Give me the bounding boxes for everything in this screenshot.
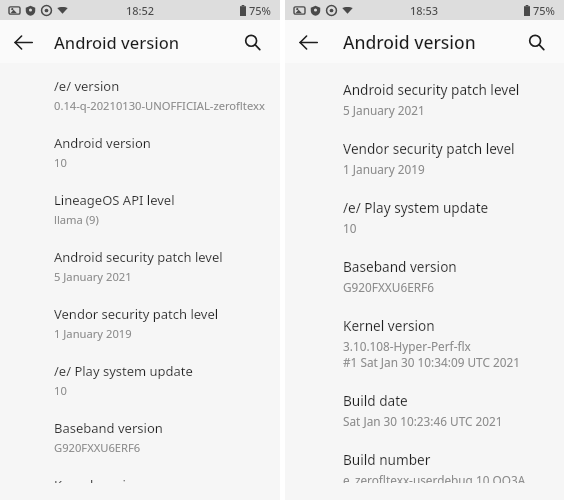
staticText: llama (9) xyxy=(54,212,99,227)
staticText: /e/ version xyxy=(54,77,120,95)
button[interactable]: Android security patch level xyxy=(0,244,280,301)
button[interactable]: Baseband version xyxy=(0,415,280,472)
staticText: 18:52 xyxy=(126,3,155,18)
staticText: 1 January 2019 xyxy=(54,326,132,341)
button[interactable]: /e/ Play system update xyxy=(0,358,280,415)
staticText: 10 xyxy=(54,155,67,170)
staticText: 75% xyxy=(533,3,555,18)
staticText: Baseband version xyxy=(343,257,457,276)
staticText: 1 January 2019 xyxy=(343,161,425,177)
staticText: Vendor security patch level xyxy=(343,139,515,158)
staticText: Vendor security patch level xyxy=(54,305,219,323)
staticText: Android version xyxy=(54,134,151,152)
button[interactable]: Android security patch level xyxy=(285,76,564,135)
button[interactable]: Build date xyxy=(285,387,564,446)
button[interactable]: Vendor security patch level xyxy=(0,301,280,358)
staticText: 75% xyxy=(249,3,271,18)
button[interactable]: Back xyxy=(290,24,326,60)
staticText: Kernel version xyxy=(343,316,435,335)
staticText: Android version xyxy=(54,31,180,53)
staticText: Build number xyxy=(343,450,431,469)
staticText: 5 January 2021 xyxy=(54,269,132,284)
staticText: 10 xyxy=(54,383,67,398)
button[interactable]: Search xyxy=(518,24,554,60)
staticText: 5 January 2021 xyxy=(343,102,425,118)
staticText: LineageOS API level xyxy=(54,191,175,209)
button[interactable]: Search xyxy=(234,24,270,60)
button[interactable]: Kernel version xyxy=(285,312,564,387)
staticText: #1 Sat Jan 30 10:34:09 UTC 2021 xyxy=(343,354,520,370)
button[interactable]: Baseband version xyxy=(285,253,564,312)
staticText: Android security patch level xyxy=(54,248,223,266)
staticText: e_zerofltexx-userdebug 10 QQ3A. xyxy=(343,472,529,483)
button[interactable]: Kernel version xyxy=(0,472,280,500)
button[interactable]: Back xyxy=(5,24,41,60)
staticText: Android security patch level xyxy=(343,80,520,99)
staticText: 0.14-q-20210130-UNOFFICIAL-zerofltexx xyxy=(54,98,265,113)
staticText: Kernel version xyxy=(54,476,142,483)
button[interactable]: Build number xyxy=(285,446,564,500)
staticText: 10 xyxy=(343,220,357,236)
staticText: Baseband version xyxy=(54,419,163,437)
staticText: G920FXXU6ERF6 xyxy=(54,440,141,455)
staticText: Android version xyxy=(343,30,476,54)
button[interactable]: LineageOS API level xyxy=(0,187,280,244)
staticText: 3.10.108-Hyper-Perf-flx xyxy=(343,338,471,354)
button[interactable]: /e/ version xyxy=(0,73,280,130)
staticText: /e/ Play system update xyxy=(343,198,489,217)
staticText: 18:53 xyxy=(410,3,439,18)
staticText: /e/ Play system update xyxy=(54,362,193,380)
button[interactable]: /e/ Play system update xyxy=(285,194,564,253)
staticText: Sat Jan 30 10:23:46 UTC 2021 xyxy=(343,413,503,429)
staticText: G920FXXU6ERF6 xyxy=(343,279,434,295)
button[interactable]: Vendor security patch level xyxy=(285,135,564,194)
staticText: Build date xyxy=(343,391,408,410)
button[interactable]: Android version xyxy=(0,130,280,187)
